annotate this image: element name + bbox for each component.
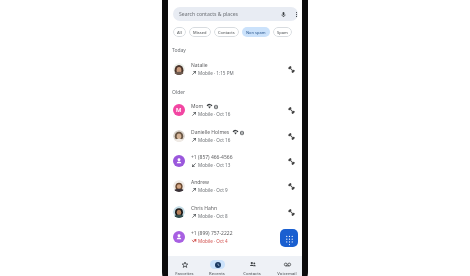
button[interactable]: Voice search xyxy=(279,10,288,19)
button[interactable]: Call xyxy=(286,181,297,192)
staticText: Spam xyxy=(277,30,288,35)
staticText: Older xyxy=(172,89,186,96)
staticText: Missed xyxy=(193,30,207,35)
button[interactable]: +1 (899) 757-2222 xyxy=(168,224,302,249)
button[interactable]: Call xyxy=(286,64,297,75)
staticText: +1 (899) 757-2222 xyxy=(191,230,233,237)
button[interactable]: Spam xyxy=(273,27,292,37)
button[interactable]: Call xyxy=(286,105,297,116)
button[interactable]: Contacts xyxy=(236,256,268,276)
button[interactable]: Voicemail xyxy=(271,256,303,276)
staticText: Mobile · Oct 16 xyxy=(198,111,231,117)
button[interactable]: +1 (857) 466-4566 xyxy=(168,148,302,173)
button[interactable]: All xyxy=(173,27,186,37)
staticText: Recents xyxy=(209,271,225,276)
button[interactable]: Recents xyxy=(201,256,233,276)
button[interactable]: Non spam xyxy=(242,27,270,37)
button[interactable]: M xyxy=(168,97,302,122)
staticText: Mobile · 1:15 PM xyxy=(198,70,234,76)
staticText: Mobile · Oct 16 xyxy=(198,137,231,143)
button[interactable]: Search contacts & places xyxy=(173,7,298,21)
staticText: Chris Hahn xyxy=(191,205,217,212)
button[interactable]: Chris Hahn xyxy=(168,199,302,224)
staticText: Today xyxy=(172,47,186,54)
button[interactable]: Call xyxy=(286,207,297,218)
staticText: Mobile · Oct 8 xyxy=(198,213,228,219)
button[interactable]: Call xyxy=(286,131,297,142)
button[interactable]: Dialpad xyxy=(280,229,298,247)
staticText: Danielle Holmes xyxy=(191,129,230,136)
staticText: M xyxy=(176,106,182,114)
staticText: Contacts xyxy=(243,271,261,276)
staticText: Andrew xyxy=(191,179,209,186)
staticText: Search contacts & places xyxy=(179,11,238,18)
staticText: +1 (857) 466-4566 xyxy=(191,154,233,161)
button[interactable]: Missed xyxy=(189,27,211,37)
staticText: Mom xyxy=(191,103,204,110)
button[interactable]: More options xyxy=(292,10,298,19)
button[interactable]: Andrew xyxy=(168,173,302,198)
button[interactable]: Call xyxy=(286,156,297,167)
staticText: Mobile · Oct 9 xyxy=(198,187,228,193)
button[interactable]: Favorites xyxy=(168,256,200,276)
staticText: Natalie xyxy=(191,62,208,69)
button[interactable]: Natalie xyxy=(168,56,302,81)
staticText: All xyxy=(177,30,182,35)
staticText: Voicemail xyxy=(277,271,297,276)
button[interactable]: Contacts xyxy=(214,27,239,37)
staticText: Mobile · Oct 13 xyxy=(198,162,231,168)
staticText: Favorites xyxy=(175,271,194,276)
staticText: Non spam xyxy=(246,30,266,35)
button[interactable]: Danielle Holmes xyxy=(168,123,302,148)
staticText: Contacts xyxy=(218,30,235,35)
staticText: Mobile · Oct 4 xyxy=(198,238,228,244)
